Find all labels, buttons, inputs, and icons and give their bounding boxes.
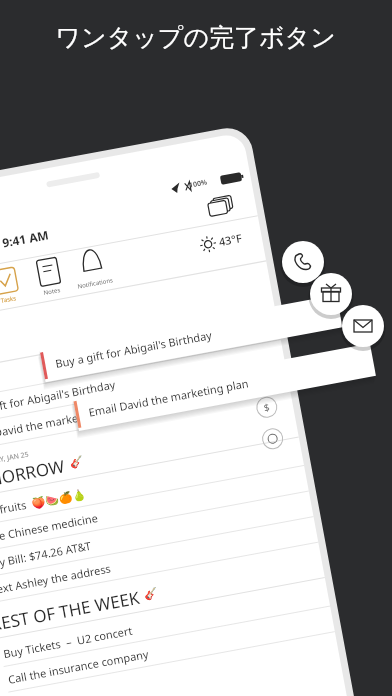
button[interactable]: One-tap done button promotional screen <box>0 0 392 696</box>
